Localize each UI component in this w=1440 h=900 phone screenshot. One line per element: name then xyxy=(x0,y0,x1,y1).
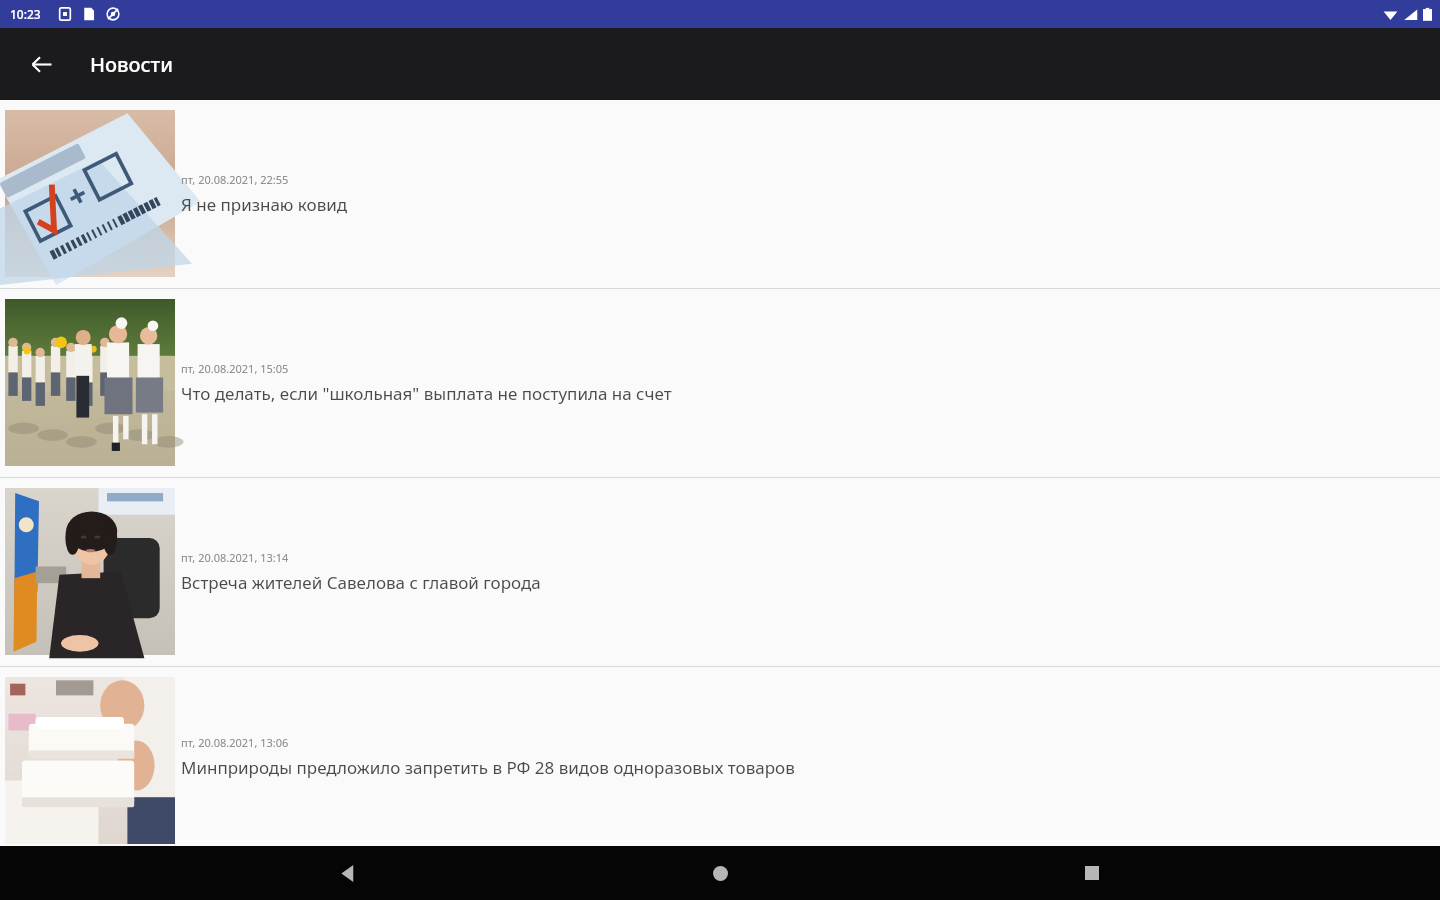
button[interactable]: пт, 20.08.2021, 15:05 xyxy=(0,289,1440,477)
button[interactable]: пт, 20.08.2021, 13:06 xyxy=(0,667,1440,846)
staticText: Я не признаю ковид xyxy=(181,193,348,216)
staticText: пт, 20.08.2021, 13:06 xyxy=(181,735,289,750)
staticText: пт, 20.08.2021, 15:05 xyxy=(181,361,289,376)
button[interactable]: Home xyxy=(696,849,744,897)
staticText: Что делать, если "школьная" выплата не п… xyxy=(181,382,672,405)
button[interactable]: Recent apps xyxy=(1068,849,1116,897)
staticText: пт, 20.08.2021, 13:14 xyxy=(181,550,289,565)
button[interactable]: Back xyxy=(18,41,64,87)
staticText: Минприроды предложило запретить в РФ 28 … xyxy=(181,756,795,779)
button[interactable]: пт, 20.08.2021, 22:55 xyxy=(0,100,1440,288)
staticText: Новости xyxy=(90,51,173,78)
staticText: пт, 20.08.2021, 22:55 xyxy=(181,172,289,187)
staticText: Встреча жителей Савелова с главой города xyxy=(181,571,541,594)
button[interactable]: Back xyxy=(324,849,372,897)
button[interactable]: пт, 20.08.2021, 13:14 xyxy=(0,478,1440,666)
staticText: 10:23 xyxy=(10,6,41,22)
